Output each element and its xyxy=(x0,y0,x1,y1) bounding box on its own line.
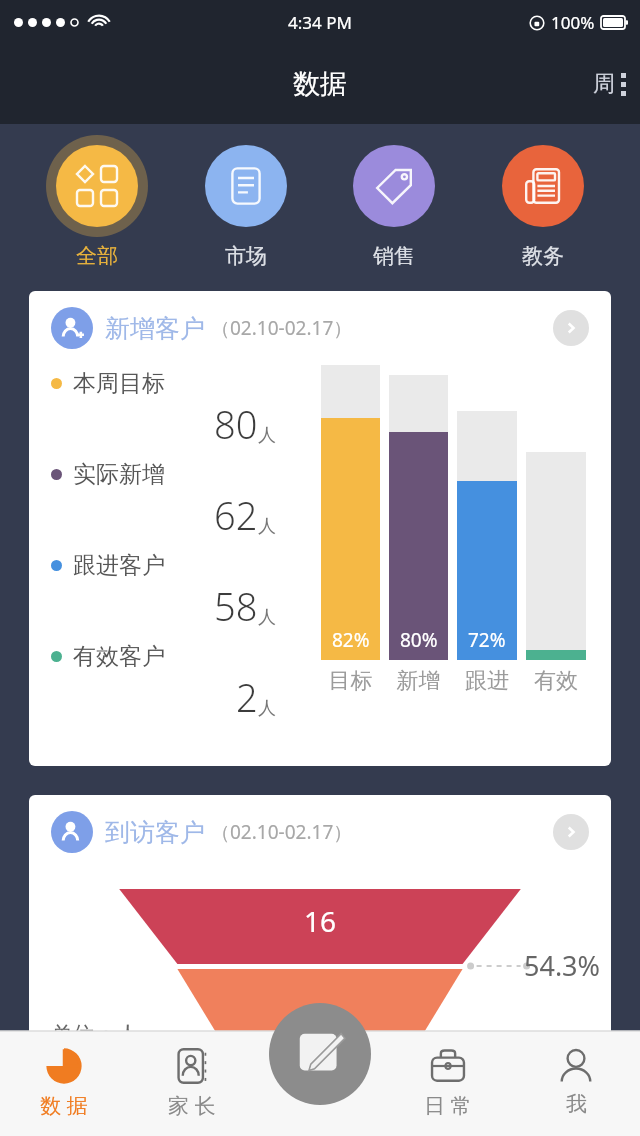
staticText: 数据 xyxy=(293,67,347,101)
staticText: 数 据 xyxy=(40,1091,88,1120)
button[interactable]: 我 xyxy=(512,1031,640,1136)
button[interactable]: 新建 xyxy=(269,1003,371,1105)
staticText: 周 xyxy=(593,70,615,98)
staticText: 单位：人 xyxy=(51,1021,139,1049)
button[interactable]: 到访客户 xyxy=(29,795,611,869)
staticText: 教务 xyxy=(522,243,564,269)
staticText: 2 xyxy=(236,671,258,723)
staticText: 54.3% xyxy=(524,947,601,984)
button[interactable]: 市场 xyxy=(187,131,305,273)
button[interactable]: 家 长 xyxy=(128,1031,256,1136)
button[interactable]: 日 常 xyxy=(384,1031,512,1136)
button[interactable]: 教务 xyxy=(484,131,602,273)
staticText: （02.10-02.17） xyxy=(211,819,353,845)
staticText: 100% xyxy=(551,11,595,34)
staticText: 16 xyxy=(304,902,337,940)
button[interactable]: 到访客户 xyxy=(29,795,611,1055)
staticText: 目标 xyxy=(321,667,380,695)
button[interactable]: 新增客户 xyxy=(29,291,611,766)
staticText: 家 长 xyxy=(168,1091,216,1120)
button[interactable]: 数 据 xyxy=(0,1031,128,1136)
button[interactable]: 全部 xyxy=(38,131,156,273)
staticText: 80 xyxy=(214,398,258,450)
staticText: 有效 xyxy=(526,667,586,695)
staticText: 人 xyxy=(258,515,276,538)
staticText: 58 xyxy=(214,580,258,632)
staticText: 72% xyxy=(468,627,506,653)
staticText: 新增 xyxy=(389,667,448,695)
staticText: 市场 xyxy=(225,243,267,269)
staticText: 80% xyxy=(400,627,438,653)
staticText: 到访客户 xyxy=(105,817,205,848)
staticText: 全部 xyxy=(76,243,118,269)
staticText: 82% xyxy=(332,627,370,653)
staticText: （02.10-02.17） xyxy=(211,315,353,341)
button[interactable]: 查看详情 xyxy=(553,310,589,346)
staticText: 实际新增 xyxy=(73,460,165,489)
staticText: 有效客户 xyxy=(73,642,165,671)
staticText: 62 xyxy=(214,489,258,541)
staticText: 人 xyxy=(258,424,276,447)
staticText: 销售 xyxy=(373,243,415,269)
button[interactable]: 新增客户 xyxy=(29,291,611,365)
staticText: 跟进客户 xyxy=(73,551,165,580)
staticText: 我 xyxy=(566,1091,587,1117)
button[interactable]: 查看详情 xyxy=(553,814,589,850)
staticText: 新增客户 xyxy=(105,313,205,344)
button[interactable]: 周 xyxy=(579,60,640,108)
staticText: 日 常 xyxy=(424,1091,472,1120)
staticText: 4:34 PM xyxy=(288,11,352,34)
button[interactable]: 销售 xyxy=(335,131,453,273)
staticText: 人 xyxy=(258,697,276,720)
staticText: 人 xyxy=(258,606,276,629)
staticText: 跟进 xyxy=(457,667,517,695)
staticText: 本周目标 xyxy=(73,369,165,398)
